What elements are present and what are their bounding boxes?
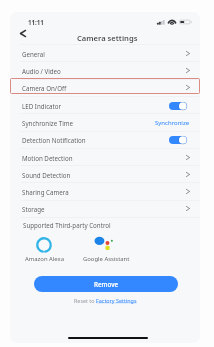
staticText: Synchronize Time: [22, 119, 74, 127]
button[interactable]: Toggle: [169, 102, 187, 110]
staticText: Remove: [94, 280, 119, 289]
staticText: Google Assistant: [83, 255, 130, 263]
button[interactable]: Motion Detection: [10, 149, 200, 166]
staticText: Detection Notification: [22, 136, 86, 144]
staticText: 11:11: [28, 18, 44, 26]
staticText: Sharing Camera: [22, 188, 69, 196]
button[interactable]: Audio / Video: [10, 62, 200, 79]
staticText: Audio / Video: [22, 67, 61, 75]
staticText: Synchronize: [155, 119, 190, 127]
button[interactable]: Camera On/Off: [10, 79, 200, 96]
staticText: Storage: [22, 205, 45, 213]
button[interactable]: Sharing Camera: [10, 183, 200, 200]
button[interactable]: Synchronize Time: [10, 114, 200, 131]
button[interactable]: Remove: [34, 276, 178, 292]
button[interactable]: General: [10, 45, 200, 62]
staticText: Motion Detection: [22, 154, 73, 162]
staticText: LED Indicator: [22, 102, 62, 110]
button[interactable]: Storage: [10, 200, 200, 217]
staticText: Supported Third-party Control: [23, 221, 111, 229]
button[interactable]: Google Assistant: [72, 234, 140, 264]
button[interactable]: Toggle: [169, 136, 187, 144]
button[interactable]: Amazon Alexa: [10, 234, 78, 264]
staticText: Camera On/Off: [22, 84, 67, 92]
staticText: Amazon Alexa: [25, 255, 64, 263]
button[interactable]: Detection Notification: [10, 131, 200, 148]
button[interactable]: LED Indicator: [10, 97, 200, 114]
staticText: Camera settings: [77, 33, 138, 43]
staticText: General: [22, 50, 45, 58]
button[interactable]: Sound Detection: [10, 166, 200, 183]
button[interactable]: Reset to Factory Settings: [74, 297, 137, 304]
staticText: Sound Detection: [22, 171, 71, 179]
button[interactable]: Back: [13, 26, 33, 41]
